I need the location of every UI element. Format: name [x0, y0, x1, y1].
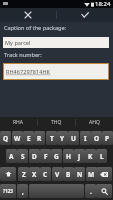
staticText: Q [3, 134, 9, 143]
other: Backspace [100, 172, 108, 177]
staticText: K [88, 152, 93, 161]
button[interactable]: Search [96, 184, 112, 198]
staticText: RH467297814HK [6, 68, 51, 76]
staticText: RHA [13, 119, 24, 126]
staticText: , [22, 187, 24, 196]
staticText: X [32, 170, 37, 179]
button[interactable]: W [12, 131, 23, 145]
button[interactable]: Y [57, 131, 68, 145]
staticText: H [66, 152, 71, 161]
staticText: J [78, 152, 81, 161]
staticText: Caption of the package: [4, 24, 67, 32]
button[interactable]: Q [0, 131, 11, 145]
button[interactable]: ?123 [0, 184, 16, 198]
button[interactable]: . [85, 184, 96, 198]
button[interactable]: X [29, 167, 40, 181]
staticText: E [27, 134, 31, 143]
staticText: Z [22, 170, 26, 179]
button[interactable]: D [29, 149, 40, 163]
staticText: C [43, 170, 48, 179]
staticText: I [84, 134, 87, 143]
button[interactable] [29, 184, 84, 198]
staticText: D [32, 152, 37, 161]
staticText: U [71, 134, 76, 143]
button[interactable]: R [34, 131, 45, 145]
button[interactable]: AHQ [76, 117, 113, 128]
button[interactable]: C [40, 167, 51, 181]
staticText: ?123 [3, 188, 13, 194]
staticText: W [14, 134, 21, 143]
button[interactable]: J [74, 149, 85, 163]
staticText: 18:24 [95, 0, 111, 8]
button[interactable]: S [17, 149, 28, 163]
button[interactable]: RHA [0, 117, 37, 128]
button[interactable]: M [86, 167, 97, 181]
staticText: L [100, 152, 104, 161]
button[interactable]: Backspace [96, 167, 112, 181]
button[interactable]: RH467297814HK [3, 63, 109, 80]
staticText: V [55, 170, 60, 179]
staticText: T [50, 134, 54, 143]
button[interactable]: P [102, 131, 113, 145]
staticText: . [90, 187, 92, 196]
button[interactable]: T [46, 131, 57, 145]
button[interactable]: B [63, 167, 74, 181]
staticText: O [94, 134, 100, 143]
button[interactable]: V [52, 167, 63, 181]
staticText: N [77, 170, 83, 179]
button[interactable]: L [96, 149, 107, 163]
staticText: A [9, 152, 14, 161]
button[interactable]: , [17, 184, 28, 198]
button[interactable]: U [68, 131, 79, 145]
staticText: Track number: [4, 51, 42, 59]
staticText: THQ [51, 119, 62, 126]
other: Search [101, 188, 108, 195]
staticText: My parcel [5, 39, 31, 47]
button[interactable]: N [74, 167, 85, 181]
staticText: R [37, 134, 42, 143]
button[interactable]: K [85, 149, 96, 163]
staticText: G [54, 152, 59, 161]
button[interactable]: H [63, 149, 74, 163]
button[interactable]: O [91, 131, 102, 145]
button[interactable]: A [6, 149, 17, 163]
staticText: P [105, 134, 110, 143]
button[interactable]: F [40, 149, 51, 163]
staticText: S [21, 152, 25, 161]
staticText: AHQ [89, 119, 100, 126]
button[interactable]: Done [57, 8, 113, 22]
staticText: B [66, 170, 71, 179]
button[interactable]: Cancel [0, 8, 56, 22]
button[interactable]: Shift [0, 167, 16, 181]
button[interactable]: G [51, 149, 62, 163]
staticText: F [44, 152, 48, 161]
button[interactable]: My parcel [3, 37, 109, 48]
button[interactable]: Z [18, 167, 29, 181]
staticText: Y [60, 134, 65, 143]
button[interactable]: I [80, 131, 91, 145]
other: Shift [5, 171, 12, 177]
button[interactable]: THQ [38, 117, 75, 128]
button[interactable]: E [23, 131, 34, 145]
staticText: M [88, 170, 95, 179]
